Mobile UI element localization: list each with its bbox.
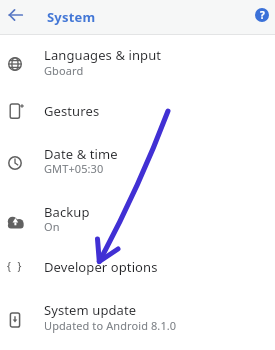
- button[interactable]: ?: [255, 8, 269, 22]
- staticText: Developer options: [44, 258, 158, 276]
- button[interactable]: [5, 5, 25, 25]
- staticText: Date & time: [44, 145, 118, 163]
- button[interactable]: Date & time: [0, 138, 275, 186]
- staticText: ?: [260, 8, 265, 22]
- staticText: Backup: [44, 203, 90, 221]
- staticText: Gboard: [44, 63, 84, 78]
- staticText: On: [44, 219, 60, 234]
- staticText: Languages & input: [44, 46, 162, 64]
- button[interactable]: { }: [0, 250, 275, 284]
- staticText: { }: [7, 259, 24, 273]
- staticText: System: [47, 8, 96, 26]
- staticText: System update: [44, 301, 137, 319]
- staticText: GMT+05:30: [44, 161, 104, 176]
- button[interactable]: Backup: [0, 197, 275, 245]
- staticText: Gestures: [44, 102, 100, 120]
- button[interactable]: Languages & input: [0, 40, 275, 88]
- button[interactable]: Gestures: [0, 91, 275, 128]
- button[interactable]: System update: [0, 293, 275, 341]
- staticText: Updated to Android 8.1.0: [44, 318, 177, 333]
